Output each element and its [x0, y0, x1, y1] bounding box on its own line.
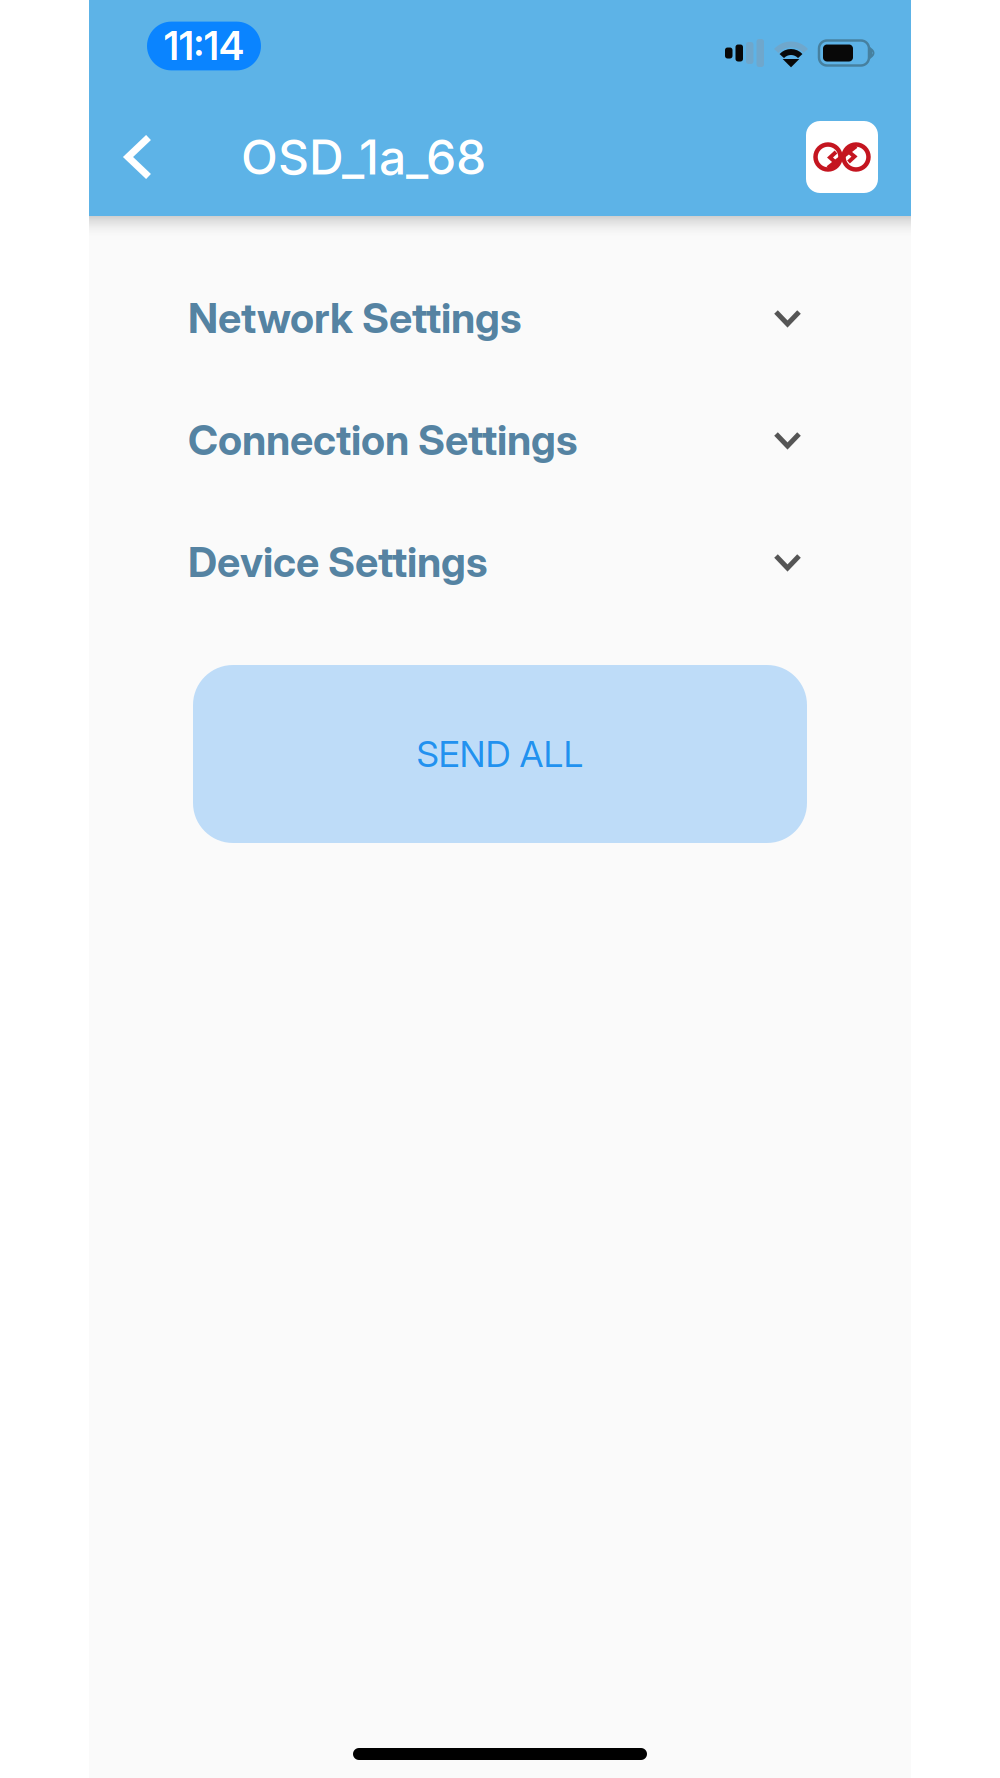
staticText: Device Settings	[188, 537, 488, 587]
staticText: OSD_1a_68	[241, 128, 486, 186]
staticText: Connection Settings	[188, 415, 578, 465]
staticText: 11:14	[164, 23, 244, 69]
button[interactable]: Connection Settings	[89, 379, 911, 501]
button[interactable]: Back	[107, 114, 169, 200]
button[interactable]: Network Settings	[89, 257, 911, 379]
button[interactable]: SEND ALL	[193, 665, 807, 843]
staticText: Network Settings	[188, 293, 522, 343]
button[interactable]: Link device	[806, 121, 878, 193]
button[interactable]: Device Settings	[89, 501, 911, 623]
staticText: SEND ALL	[416, 732, 583, 776]
